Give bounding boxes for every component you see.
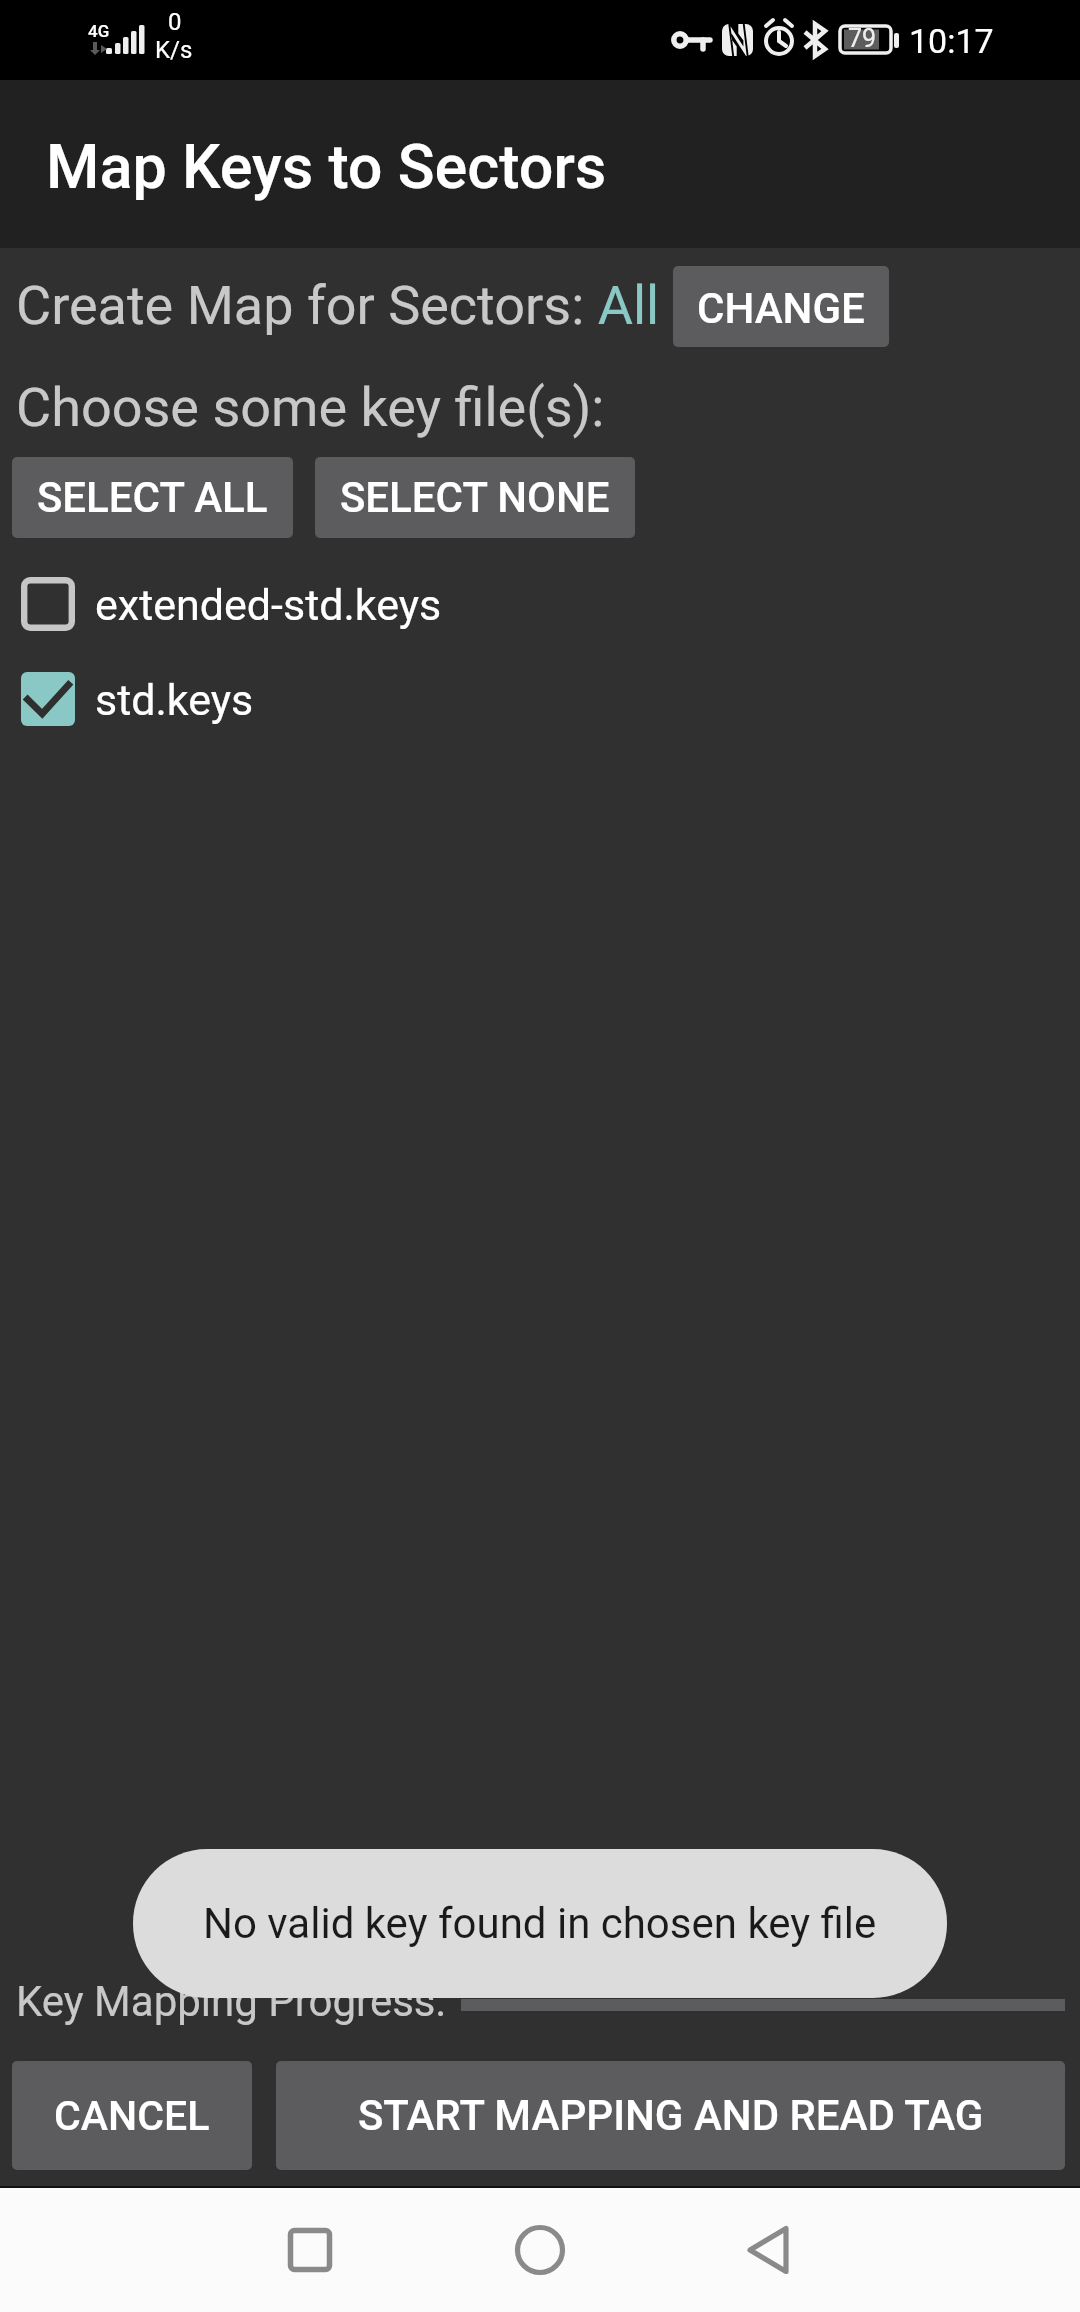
button[interactable]: std.keys [0, 655, 1080, 750]
staticText: START MAPPING AND READ TAG [358, 2091, 984, 2140]
button[interactable]: SELECT NONE [315, 457, 635, 538]
staticText: extended-std.keys [95, 580, 442, 630]
staticText: Map Keys to Sectors [46, 131, 607, 202]
staticText: std.keys [95, 675, 254, 725]
button[interactable]: Recent apps [250, 2190, 370, 2310]
staticText: CANCEL [54, 2092, 210, 2140]
staticText: Key Mapping Progress: [16, 1977, 446, 2026]
button[interactable]: Back [708, 2190, 828, 2310]
staticText: Choose some key file(s): [16, 376, 605, 439]
staticText: SELECT ALL [37, 473, 268, 522]
staticText: 10:17 [909, 21, 994, 61]
button[interactable]: CHANGE [673, 266, 889, 347]
staticText: Create Map for Sectors: All [16, 274, 660, 337]
staticText: 79 [848, 24, 877, 53]
button[interactable]: SELECT ALL [12, 457, 293, 538]
button[interactable]: CANCEL [12, 2061, 252, 2170]
staticText: 0 [168, 8, 182, 36]
button[interactable]: extended-std.keys [0, 560, 1080, 655]
staticText: No valid key found in chosen key file [203, 1899, 877, 1948]
button[interactable]: Home [480, 2190, 600, 2310]
staticText: 4G [88, 21, 110, 41]
staticText: CHANGE [697, 284, 865, 333]
button[interactable]: START MAPPING AND READ TAG [276, 2061, 1065, 2170]
staticText: SELECT NONE [340, 473, 610, 522]
staticText: K/s [155, 36, 193, 64]
